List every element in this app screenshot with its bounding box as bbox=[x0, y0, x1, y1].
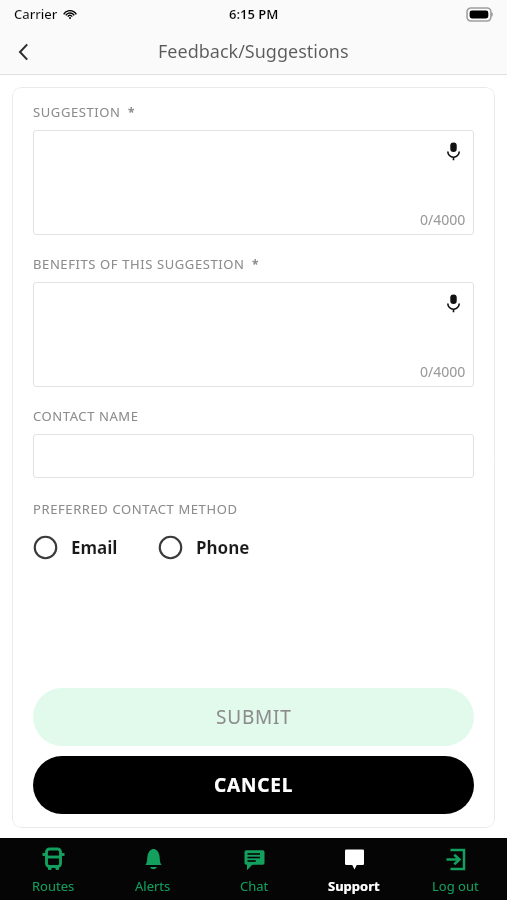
staticText: Phone bbox=[196, 536, 250, 559]
button[interactable]: Back bbox=[0, 28, 48, 75]
button[interactable]: Voice input bbox=[33, 282, 474, 387]
button[interactable]: Log out bbox=[407, 838, 503, 900]
staticText: Carrier bbox=[14, 5, 58, 23]
button[interactable]: Phone bbox=[158, 535, 250, 560]
staticText: Chat bbox=[240, 877, 269, 895]
staticText: Routes bbox=[32, 877, 75, 895]
staticText: * bbox=[252, 256, 259, 272]
staticText: Feedback/Suggestions bbox=[158, 39, 349, 64]
button[interactable]: Email bbox=[33, 535, 118, 560]
button[interactable]: CANCEL bbox=[33, 756, 474, 814]
button[interactable]: Voice input bbox=[438, 288, 468, 318]
staticText: Email bbox=[71, 536, 118, 559]
staticText: Alerts bbox=[135, 877, 171, 895]
button[interactable]: Support bbox=[306, 838, 402, 900]
staticText: BENEFITS OF THIS SUGGESTION bbox=[33, 255, 245, 273]
staticText: 0/4000 bbox=[420, 210, 466, 229]
button[interactable]: Voice input bbox=[33, 130, 474, 235]
staticText: SUBMIT bbox=[216, 704, 292, 730]
button[interactable]: Voice input bbox=[438, 136, 468, 166]
staticText: SUGGESTION bbox=[33, 103, 121, 121]
staticText: 0/4000 bbox=[420, 362, 466, 381]
button[interactable]: Chat bbox=[206, 838, 302, 900]
staticText: PREFERRED CONTACT METHOD bbox=[33, 500, 238, 518]
button[interactable]: SUBMIT bbox=[33, 688, 474, 746]
staticText: 6:15 PM bbox=[229, 5, 279, 23]
staticText: * bbox=[128, 104, 135, 120]
button[interactable]: Routes bbox=[5, 838, 101, 900]
button[interactable] bbox=[33, 434, 474, 478]
staticText: Support bbox=[328, 877, 380, 895]
button[interactable]: Alerts bbox=[105, 838, 201, 900]
staticText: Log out bbox=[432, 877, 479, 895]
staticText: CANCEL bbox=[214, 772, 294, 798]
staticText: CONTACT NAME bbox=[33, 407, 139, 425]
